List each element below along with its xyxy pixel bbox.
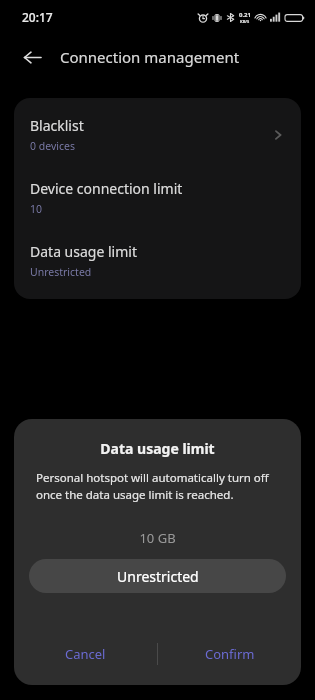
button[interactable]: Data usage limit bbox=[14, 238, 301, 283]
button[interactable]: Back bbox=[12, 37, 52, 77]
staticText: 10 GB bbox=[14, 529, 301, 547]
staticText: 0 devices bbox=[30, 139, 75, 153]
button[interactable]: Cancel bbox=[14, 637, 157, 671]
staticText: Blacklist bbox=[30, 116, 84, 135]
staticText: 10 bbox=[30, 202, 43, 216]
staticText: Cancel bbox=[65, 645, 106, 663]
staticText: Unrestricted bbox=[117, 567, 199, 586]
button[interactable]: Confirm bbox=[158, 637, 301, 671]
button[interactable]: Device connection limit bbox=[14, 175, 301, 220]
staticText: Data usage limit bbox=[30, 242, 137, 261]
staticText: 0.21 bbox=[239, 11, 251, 19]
staticText: KB/S bbox=[240, 19, 250, 24]
button[interactable]: Blacklist bbox=[14, 112, 301, 157]
staticText: Confirm bbox=[205, 645, 255, 663]
staticText: Data usage limit bbox=[14, 439, 301, 458]
staticText: 20:17 bbox=[22, 9, 53, 25]
button[interactable]: Unrestricted bbox=[29, 559, 286, 593]
staticText: Connection management bbox=[60, 47, 240, 67]
staticText: Personal hotspot will automatically turn… bbox=[36, 470, 279, 503]
staticText: Unrestricted bbox=[30, 265, 92, 279]
staticText: Device connection limit bbox=[30, 179, 183, 198]
